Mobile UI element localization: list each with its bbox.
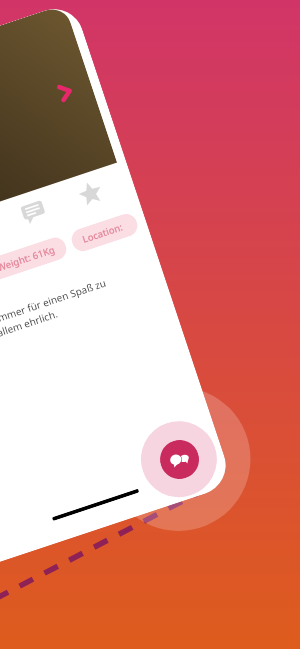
button[interactable]: Next photo — [49, 76, 82, 109]
button[interactable]: Weight: 61Kg — [0, 235, 69, 283]
button[interactable]: Favourite — [74, 177, 107, 210]
staticText: Weight: 61Kg — [0, 243, 57, 274]
button[interactable]: Location: Berlin — [69, 211, 140, 254]
button[interactable]: Open chat — [155, 435, 204, 484]
button[interactable]: Messages — [17, 196, 50, 229]
staticText: Location: Berlin — [81, 219, 128, 246]
staticText: Hi ich bin Lena, immer für einen Spaß zu… — [0, 267, 137, 362]
